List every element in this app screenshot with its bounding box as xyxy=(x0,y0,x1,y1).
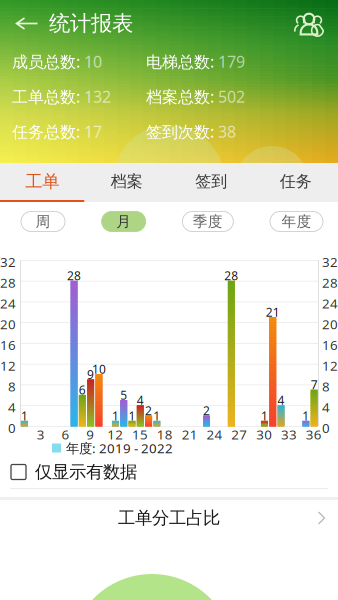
staticText: 10 xyxy=(92,361,106,377)
staticText: 502 xyxy=(218,86,245,107)
staticText: 年度: 2019 - 2022 xyxy=(66,439,173,457)
staticText: 签到 xyxy=(195,172,227,191)
staticText: 1 xyxy=(21,408,28,424)
staticText: 4 xyxy=(8,398,16,416)
staticText: 5 xyxy=(120,387,127,403)
staticText: 21 xyxy=(266,304,280,320)
staticText: 24 xyxy=(206,425,222,443)
staticText: 30 xyxy=(256,425,272,443)
staticText: 签到次数: xyxy=(146,121,214,142)
staticText: 周 xyxy=(35,212,50,230)
staticText: 132 xyxy=(84,86,111,107)
staticText: 21 xyxy=(182,425,198,443)
staticText: 2 xyxy=(203,403,210,418)
staticText: 1 xyxy=(153,408,160,424)
button[interactable]: Members xyxy=(294,2,338,45)
staticText: 4 xyxy=(137,392,144,408)
button[interactable]: 月 xyxy=(102,211,146,231)
button[interactable]: 任务 xyxy=(253,163,338,202)
staticText: 3 xyxy=(37,425,45,443)
button[interactable]: 季度 xyxy=(182,211,233,231)
staticText: 统计报表 xyxy=(49,10,133,37)
staticText: 月 xyxy=(116,212,131,230)
staticText: 1 xyxy=(261,408,268,424)
staticText: 任务 xyxy=(280,172,312,191)
staticText: 24 xyxy=(322,294,338,312)
staticText: 电梯总数: xyxy=(146,51,214,72)
staticText: 18 xyxy=(157,425,173,443)
staticText: 28 xyxy=(67,268,81,284)
staticText: 28 xyxy=(0,274,16,291)
staticText: 7 xyxy=(311,377,318,393)
staticText: 年度 xyxy=(281,212,311,230)
staticText: 1 xyxy=(128,408,135,424)
staticText: 9 xyxy=(87,366,94,382)
staticText: 0 xyxy=(322,419,330,437)
button[interactable]: 工单 xyxy=(0,163,84,202)
staticText: 6 xyxy=(79,382,86,398)
staticText: 档案 xyxy=(111,172,143,191)
button[interactable]: 年度 xyxy=(270,211,323,231)
staticText: 档案总数: xyxy=(146,86,214,107)
staticText: 20 xyxy=(322,315,338,333)
staticText: 17 xyxy=(84,121,102,142)
staticText: 33 xyxy=(281,425,297,443)
staticText: 12 xyxy=(0,357,16,374)
staticText: 38 xyxy=(218,121,236,142)
staticText: 工单总数: xyxy=(12,86,80,107)
staticText: 15 xyxy=(132,425,148,443)
staticText: 仅显示有数据 xyxy=(35,461,137,483)
staticText: 32 xyxy=(0,253,16,271)
staticText: 4 xyxy=(322,398,330,416)
staticText: 28 xyxy=(322,274,338,291)
staticText: 工单 xyxy=(25,171,59,192)
staticText: 16 xyxy=(0,336,16,354)
staticText: 任务总数: xyxy=(12,121,80,142)
staticText: 成员总数: xyxy=(12,51,80,72)
button[interactable]: 仅显示有数据 xyxy=(0,456,338,488)
button[interactable]: 工单分工占比 xyxy=(0,500,338,536)
staticText: 6 xyxy=(61,425,69,443)
staticText: 36 xyxy=(306,425,322,443)
staticText: 179 xyxy=(218,51,245,72)
staticText: 12 xyxy=(107,425,123,443)
staticText: 28 xyxy=(224,268,238,284)
staticText: 4 xyxy=(277,392,284,408)
staticText: 工单分工占比 xyxy=(118,507,220,529)
staticText: 27 xyxy=(231,425,247,443)
button[interactable]: 签到 xyxy=(169,163,253,202)
button[interactable]: 档案 xyxy=(84,163,169,202)
staticText: 8 xyxy=(322,377,330,395)
staticText: 16 xyxy=(322,336,338,354)
staticText: 32 xyxy=(322,253,338,271)
staticText: 2 xyxy=(145,403,152,418)
staticText: 季度 xyxy=(193,212,223,230)
staticText: 8 xyxy=(8,377,16,395)
staticText: 9 xyxy=(86,425,94,443)
button[interactable]: 统计报表 xyxy=(49,0,133,49)
staticText: 12 xyxy=(322,357,338,374)
staticText: 1 xyxy=(302,408,309,424)
staticText: 1 xyxy=(112,408,119,424)
staticText: 20 xyxy=(0,315,16,333)
button[interactable]: 周 xyxy=(21,211,65,231)
staticText: 0 xyxy=(8,419,16,437)
staticText: 24 xyxy=(0,294,16,312)
button[interactable]: Back xyxy=(0,4,49,42)
staticText: 10 xyxy=(84,51,102,72)
